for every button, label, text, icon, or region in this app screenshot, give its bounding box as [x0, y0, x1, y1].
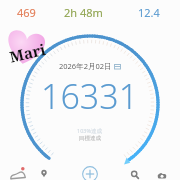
staticText: 2026年2月02日	[59, 61, 112, 71]
button[interactable]: Location	[31, 161, 57, 180]
staticText: 103%達成	[77, 127, 103, 135]
staticText: 16331	[41, 73, 139, 119]
staticText: 2h 48m	[64, 5, 103, 20]
staticText: Mari	[7, 39, 48, 66]
button[interactable]: Search	[122, 162, 148, 180]
button[interactable]: Add	[77, 161, 103, 180]
staticText: 目標達成	[79, 135, 101, 142]
button[interactable]: Steps	[5, 160, 31, 180]
staticText: 469	[17, 5, 36, 20]
button[interactable]: Camera	[149, 163, 175, 180]
staticText: 12.4	[138, 5, 160, 20]
